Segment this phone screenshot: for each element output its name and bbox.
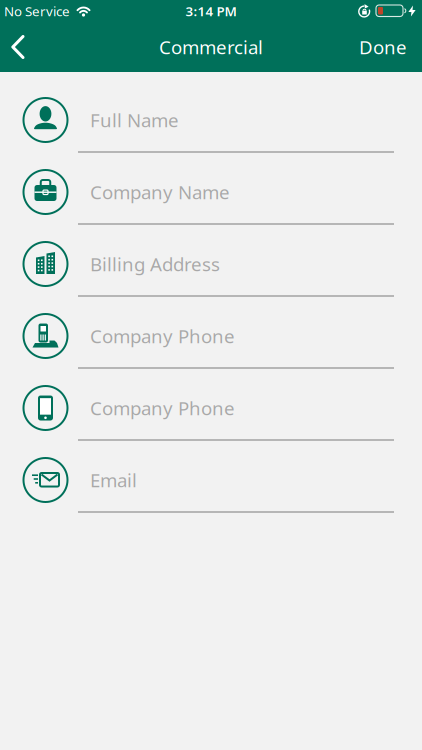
button[interactable]: Company Phone <box>0 300 422 372</box>
staticText: Full Name <box>90 108 179 132</box>
staticText: Done <box>359 35 407 59</box>
staticText: No Service <box>4 2 70 20</box>
staticText: Billing Address <box>90 252 220 276</box>
staticText: Company Phone <box>90 396 235 420</box>
button[interactable]: Company Name <box>0 156 422 228</box>
staticText: 3:14 PM <box>185 2 236 20</box>
button[interactable]: Back <box>0 22 41 72</box>
button[interactable]: Email <box>0 444 422 516</box>
staticText: Company Name <box>90 180 230 204</box>
staticText: Email <box>90 468 137 492</box>
button[interactable]: Billing Address <box>0 228 422 300</box>
button[interactable]: Done <box>359 22 422 72</box>
button[interactable]: Company Phone <box>0 372 422 444</box>
staticText: Commercial <box>159 35 263 59</box>
staticText: Company Phone <box>90 324 235 348</box>
button[interactable]: Full Name <box>0 84 422 156</box>
